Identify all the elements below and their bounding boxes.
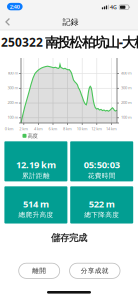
staticText: 14 km <box>106 126 117 131</box>
staticText: 8 km <box>63 126 72 131</box>
staticText: 100 m <box>121 114 132 120</box>
staticText: 514 m <box>23 198 49 210</box>
button[interactable]: 分享成就 <box>69 263 120 278</box>
staticText: 離開 <box>32 267 46 275</box>
staticText: 300 m <box>121 85 132 90</box>
staticText: 2:40 <box>10 3 20 10</box>
button[interactable] <box>1 15 15 29</box>
staticText: 400 m <box>7 70 18 76</box>
staticText: 花費時間 <box>88 172 116 180</box>
staticText: 2 km <box>19 126 28 131</box>
staticText: 南投松柏坑山-大橫嶺 <box>45 33 138 51</box>
staticText: 05:50:03 <box>84 158 120 171</box>
staticText: 300 m <box>7 85 18 90</box>
staticText: 高度 <box>27 133 37 139</box>
button[interactable]: 離開 <box>19 263 60 278</box>
staticText: 522 m <box>89 198 115 210</box>
staticText: 總下降高度 <box>84 211 119 219</box>
staticText: 記録 <box>62 17 78 27</box>
staticText: 12 km <box>91 126 102 131</box>
staticText: 400 m <box>121 70 132 76</box>
staticText: 10 km <box>77 126 88 131</box>
staticText: 200 m <box>7 100 18 105</box>
staticText: 12.19 km <box>16 158 56 171</box>
staticText: 分享成就 <box>81 267 109 275</box>
staticText: 4 km <box>34 126 43 131</box>
staticText: 100 m <box>7 114 18 120</box>
staticText: 0 km <box>5 126 14 131</box>
staticText: 總爬升高度 <box>18 211 53 219</box>
staticText: 6 km <box>48 126 57 131</box>
staticText: 200 m <box>121 100 132 105</box>
staticText: 儲存完成 <box>51 232 87 244</box>
staticText: 4G <box>110 4 117 11</box>
staticText: 累計距離 <box>22 172 50 180</box>
staticText: 250322 <box>1 34 43 50</box>
